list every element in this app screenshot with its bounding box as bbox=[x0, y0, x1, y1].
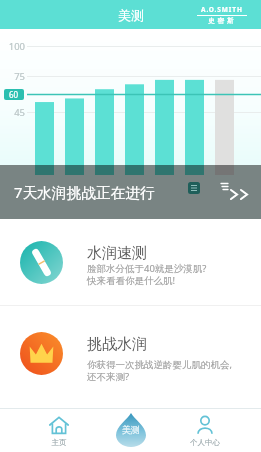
button[interactable]: 个人中心 bbox=[185, 410, 225, 450]
staticText: A.O.SMITH bbox=[201, 5, 243, 14]
button[interactable]: Calendar bbox=[188, 182, 200, 194]
button[interactable]: 7天水润挑战正在进行 bbox=[0, 165, 261, 219]
staticText: 45 bbox=[14, 106, 25, 119]
staticText: 主页 bbox=[39, 438, 79, 447]
staticText: 水润速测 bbox=[87, 244, 147, 263]
staticText: 史密斯 bbox=[208, 17, 237, 25]
staticText: 100 bbox=[8, 40, 25, 53]
staticText: 美测 bbox=[118, 7, 144, 23]
button[interactable]: More bbox=[219, 180, 251, 200]
staticText: 挑战水润 bbox=[87, 335, 147, 354]
staticText: 60 bbox=[9, 89, 19, 100]
button[interactable]: 美测 bbox=[116, 413, 146, 447]
staticText: 7天水润挑战正在进行 bbox=[14, 182, 155, 202]
staticText: 你获得一次挑战逆龄婴儿肌的机会, bbox=[87, 358, 233, 371]
button[interactable]: 挑战水润 bbox=[0, 306, 261, 400]
staticText: 还不来测? bbox=[87, 370, 130, 383]
button[interactable]: 主页 bbox=[39, 410, 79, 450]
staticText: 个人中心 bbox=[185, 438, 225, 447]
staticText: 脸部水分低于40就是沙漠肌? bbox=[87, 262, 207, 275]
staticText: 75 bbox=[14, 70, 25, 83]
staticText: 快来看看你是什么肌! bbox=[87, 274, 176, 287]
button[interactable]: 水润速测 bbox=[0, 219, 261, 305]
staticText: 美测 bbox=[122, 424, 140, 435]
